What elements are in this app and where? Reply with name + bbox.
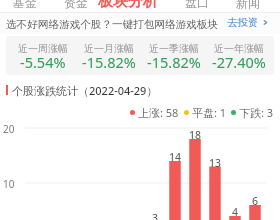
staticText: 6 [252,194,259,205]
button[interactable]: 新闻 [236,0,260,12]
staticText: -27.40% [212,52,266,72]
staticText: 20 [3,122,15,134]
button[interactable]: 资金 [64,0,88,12]
staticText: -15.82% [82,52,136,72]
button[interactable]: 平盘: 1 [184,105,227,119]
staticText: 14 [169,150,182,161]
staticText: 近一年涨幅 [214,42,264,55]
staticText: -15.82% [147,52,201,72]
button[interactable]: 上涨: 58 [130,105,179,119]
button[interactable]: 盘口 [185,0,209,12]
staticText: 去投资 [227,16,259,29]
button[interactable]: 下跌: 3 [231,105,274,119]
staticText: 平盘: 1 [192,105,227,119]
staticText: 13 [209,156,222,167]
staticText: 10 [3,177,15,189]
button[interactable]: 去投资 [227,16,268,29]
staticText: 板块分析 [98,0,158,11]
staticText: 上涨: 58 [138,105,179,119]
staticText: 基金 [13,0,37,10]
staticText: 18 [189,128,202,139]
staticText: 盘口 [185,0,209,10]
staticText: 个股涨跌统计（2022-04-29） [12,83,158,98]
staticText: 4 [232,205,239,216]
staticText: 新闻 [236,0,260,10]
staticText: 下跌: 3 [239,105,274,119]
staticText: 近一月涨幅 [84,42,134,55]
staticText: -5.54% [20,52,66,72]
staticText: 选不好网络游戏个股？一键打包网络游戏板块 [6,18,218,31]
staticText: 近一周涨幅 [18,42,68,55]
staticText: 资金 [64,0,88,10]
button[interactable]: 板块分析 [97,0,158,11]
staticText: 3 [152,211,159,220]
button[interactable]: 基金 [13,0,37,12]
staticText: 近一季涨幅 [149,42,199,55]
